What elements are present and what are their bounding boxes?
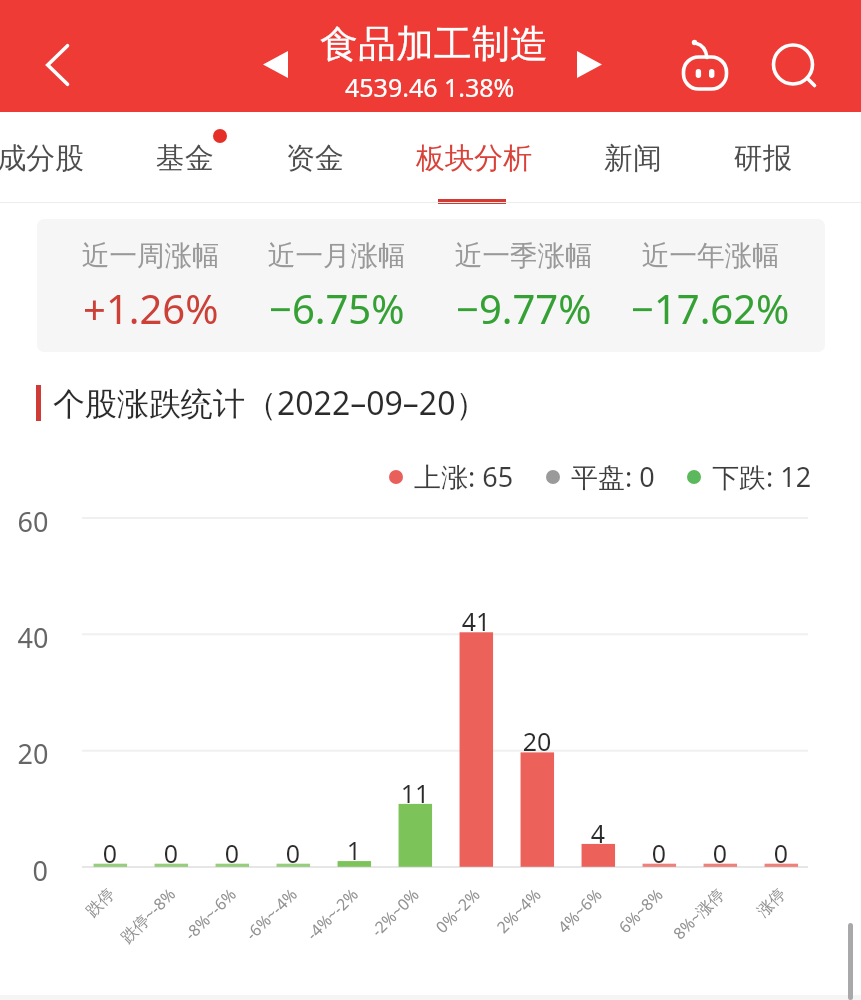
button[interactable]: Search xyxy=(760,31,828,99)
button[interactable]: 平盘: 0 xyxy=(546,458,655,495)
staticText: 平盘: 0 xyxy=(571,458,655,495)
staticText: 近一季涨幅 xyxy=(455,239,593,274)
button[interactable]: 资金 xyxy=(286,112,344,203)
staticText: 板块分析 xyxy=(416,140,532,177)
staticText: −9.77% xyxy=(456,281,592,335)
staticText: +1.26% xyxy=(83,281,219,335)
button[interactable]: 上涨: 65 xyxy=(389,458,514,495)
staticText: −17.62% xyxy=(631,281,790,335)
button[interactable]: Back xyxy=(25,33,89,97)
button[interactable]: 近一月涨幅 xyxy=(244,219,430,352)
button[interactable]: 近一年涨幅 xyxy=(617,219,804,352)
button[interactable]: 成分股 xyxy=(0,112,84,203)
staticText: 上涨: 65 xyxy=(414,458,514,495)
staticText: 个股涨跌统计（2022–09–20） xyxy=(53,381,488,425)
staticText: −6.75% xyxy=(269,281,405,335)
button[interactable]: 近一周涨幅 xyxy=(58,219,244,352)
staticText: 基金 xyxy=(156,140,214,177)
staticText: 新闻 xyxy=(604,140,662,177)
staticText: 资金 xyxy=(286,140,344,177)
button[interactable]: 新闻 xyxy=(604,112,662,203)
staticText: 近一周涨幅 xyxy=(82,239,220,274)
button[interactable]: 基金 xyxy=(156,112,214,203)
staticText: 下跌: 12 xyxy=(712,458,812,495)
staticText: 4539.46 1.38% xyxy=(345,70,515,104)
button[interactable]: 近一季涨幅 xyxy=(430,219,617,352)
button[interactable]: 下跌: 12 xyxy=(687,458,812,495)
button[interactable]: AI assistant xyxy=(671,31,739,99)
staticText: 近一月涨幅 xyxy=(268,239,406,274)
button[interactable]: 研报 xyxy=(734,112,792,203)
staticText: 研报 xyxy=(734,140,792,177)
staticText: 近一年涨幅 xyxy=(642,239,780,274)
button[interactable]: Previous sector xyxy=(252,41,299,88)
staticText: 食品加工制造 xyxy=(320,20,548,68)
button[interactable]: Next sector xyxy=(566,41,613,88)
button[interactable]: 板块分析 xyxy=(416,112,532,203)
staticText: 成分股 xyxy=(0,140,84,177)
